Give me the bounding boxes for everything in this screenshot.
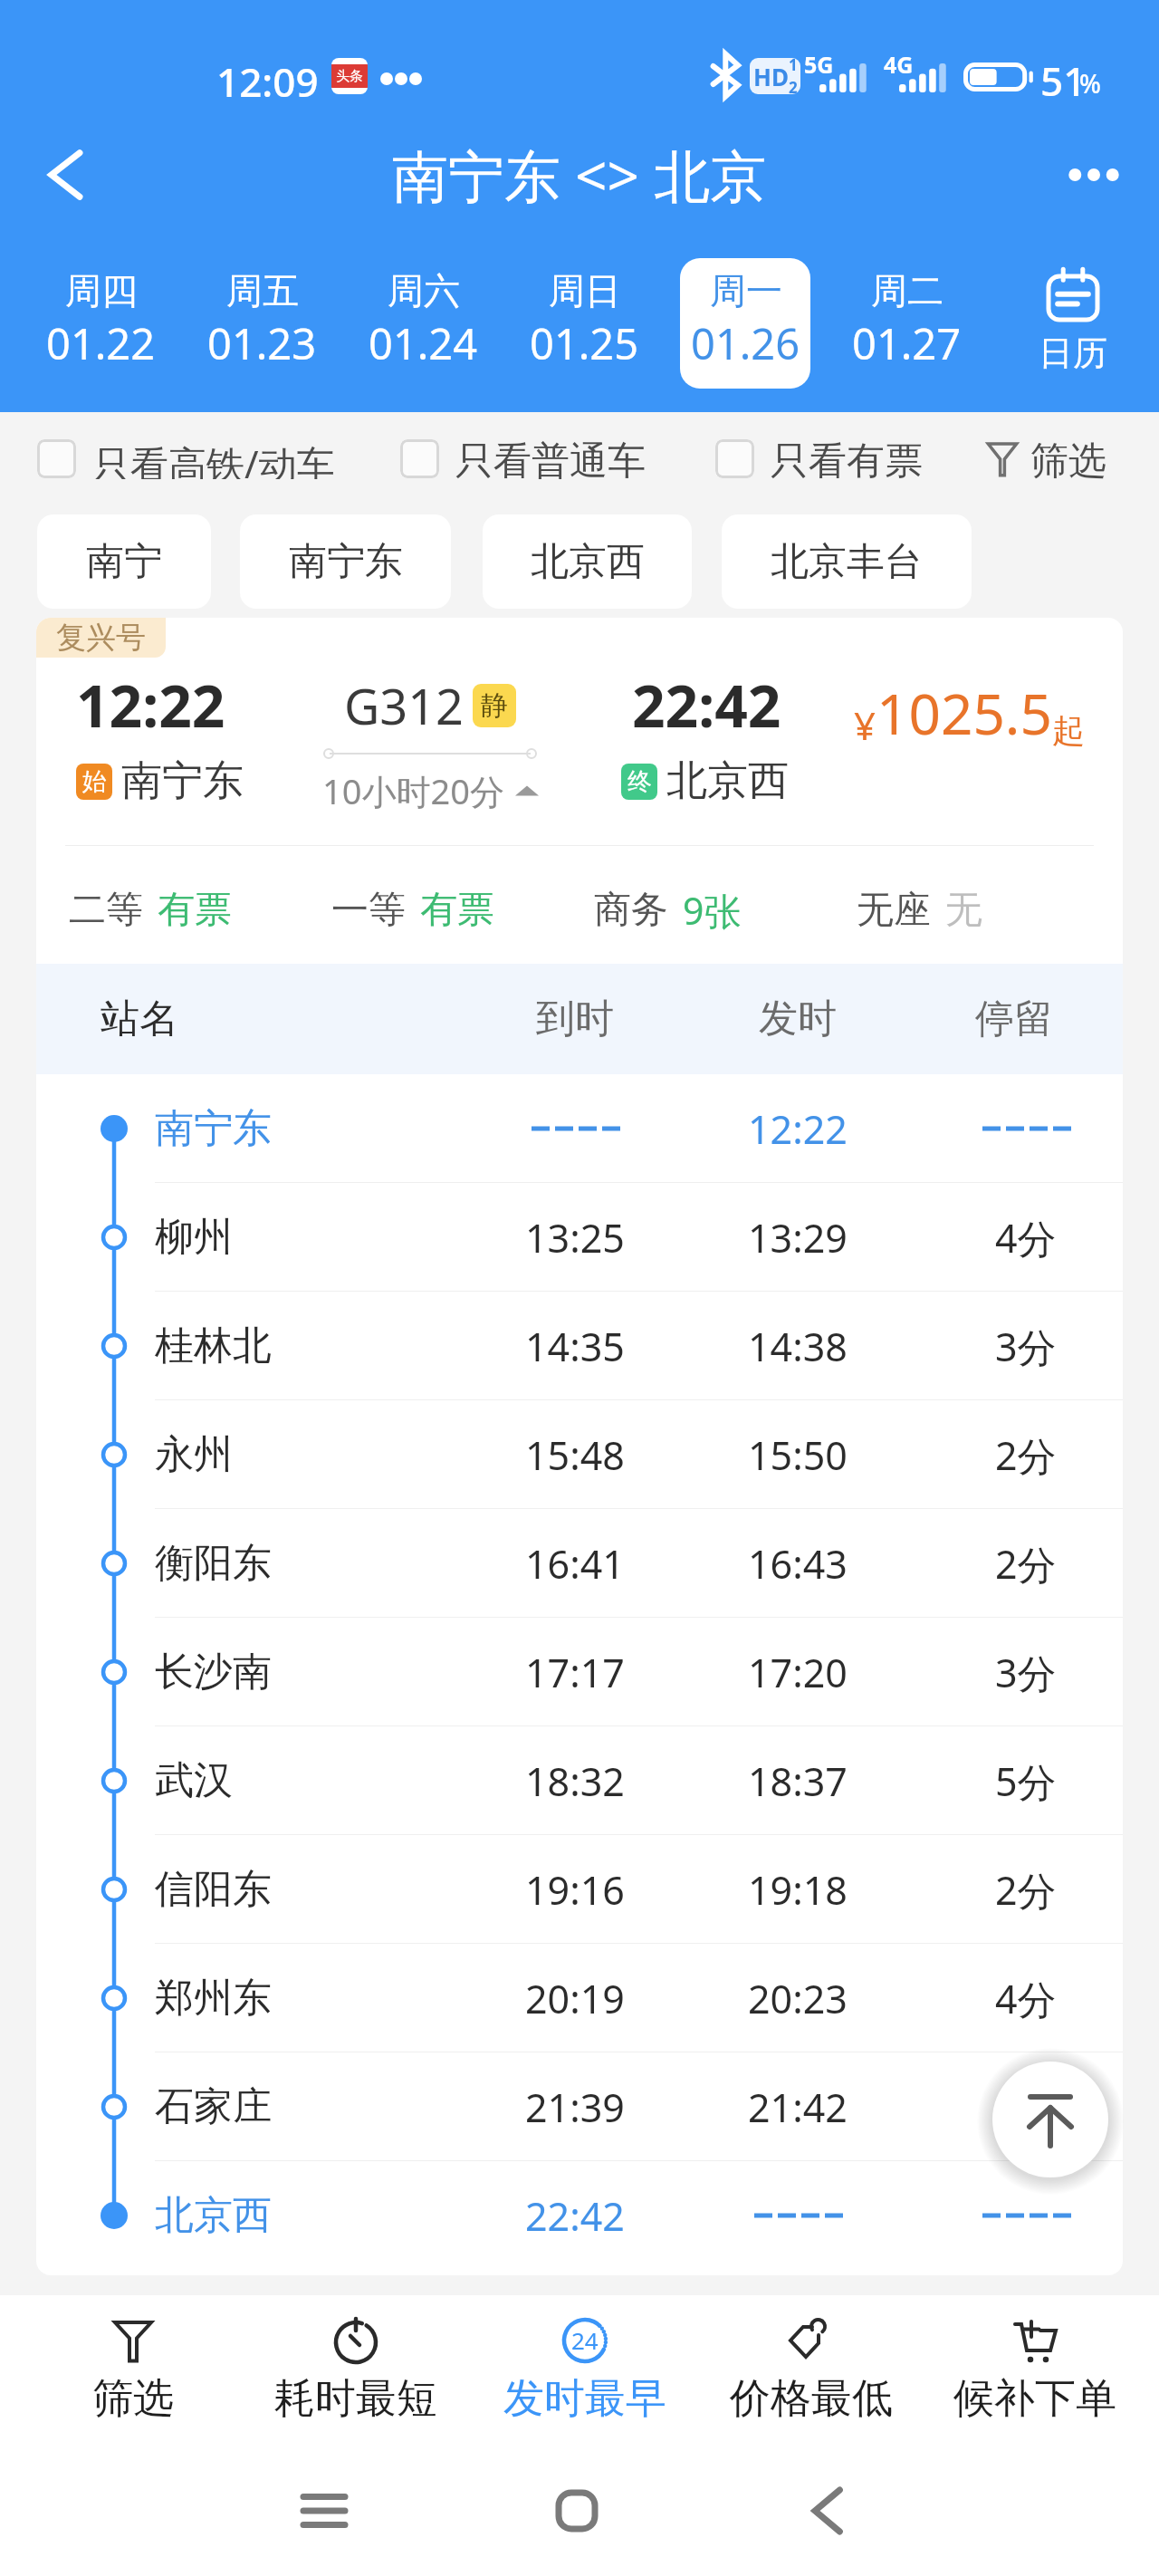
staticText: 二等	[69, 887, 143, 934]
staticText: 静	[481, 688, 508, 723]
staticText: 周二	[871, 268, 943, 313]
staticText: 桂林北	[155, 1322, 272, 1370]
staticText: 商务	[594, 887, 668, 934]
staticText: 17:17	[525, 1646, 625, 1699]
staticText: 耗时最短	[274, 2373, 437, 2425]
staticText: 南宁东 <> 北京	[392, 137, 767, 214]
button[interactable]: 周日	[519, 258, 649, 389]
button[interactable]: 武汉	[36, 1726, 1123, 1835]
staticText: 18:37	[748, 1754, 848, 1808]
staticText: 01.22	[46, 314, 156, 372]
button[interactable]: 郑州东	[36, 1944, 1123, 2052]
button[interactable]: 长沙南	[36, 1618, 1123, 1726]
staticText: 到时	[536, 995, 614, 1043]
staticText: 筛选	[92, 2373, 174, 2425]
staticText: 有票	[420, 887, 494, 934]
staticText: 永州	[155, 1430, 233, 1479]
staticText: 北京丰台	[771, 538, 923, 586]
button[interactable]: 周一	[680, 258, 810, 389]
button[interactable]: 南宁	[37, 514, 211, 609]
button[interactable]: Calendar	[987, 234, 1159, 412]
staticText: 周一	[710, 268, 782, 313]
button[interactable]: 耗时最短	[247, 2295, 465, 2446]
staticText: 20:23	[748, 1972, 848, 2025]
staticText: 无座	[857, 887, 931, 934]
staticText: 19:16	[525, 1863, 625, 1917]
staticText: 有票	[158, 887, 232, 934]
staticText: 01.26	[691, 314, 800, 372]
button[interactable]: 只看高铁/动车	[37, 437, 335, 479]
staticText: 南宁东	[121, 755, 244, 807]
button[interactable]: More options	[1054, 135, 1134, 215]
staticText: 01.23	[207, 314, 317, 372]
button[interactable]: 北京西	[36, 2161, 1123, 2270]
staticText: 2	[789, 77, 798, 94]
button[interactable]: 筛选	[24, 2295, 242, 2446]
button[interactable]: 价格最低	[703, 2295, 920, 2446]
button[interactable]: 周四	[35, 258, 166, 389]
button[interactable]: 候补下单	[926, 2295, 1144, 2446]
staticText: 停留	[975, 995, 1053, 1043]
staticText: 14:35	[525, 1320, 625, 1373]
button[interactable]: Back	[786, 2470, 867, 2552]
staticText: 北京西	[155, 2191, 272, 2240]
staticText: 只看高铁/动车	[92, 437, 335, 479]
staticText: 北京西	[531, 538, 645, 586]
button[interactable]: Back	[25, 135, 105, 215]
staticText: 12:09	[216, 54, 319, 109]
staticText: 5分	[995, 1754, 1057, 1808]
button[interactable]: 北京丰台	[722, 514, 972, 609]
button[interactable]: 南宁东	[36, 1074, 1123, 1183]
staticText: 01.25	[530, 314, 639, 372]
button[interactable]: 衡阳东	[36, 1509, 1123, 1618]
staticText: 武汉	[155, 1756, 233, 1805]
button[interactable]: 桂林北	[36, 1292, 1123, 1400]
button[interactable]: 信阳东	[36, 1835, 1123, 1944]
button[interactable]: 周六	[358, 258, 488, 389]
button[interactable]: 只看普通车	[400, 437, 646, 479]
staticText: 4G	[884, 49, 914, 80]
staticText: 2分	[995, 1428, 1057, 1482]
staticText: 16:43	[748, 1537, 848, 1591]
staticText: 起	[1052, 710, 1085, 751]
button[interactable]: Recent apps	[283, 2470, 365, 2552]
button[interactable]: 24	[476, 2295, 694, 2446]
staticText: 发时	[759, 995, 837, 1043]
staticText: 19:18	[748, 1863, 848, 1917]
staticText: 16:41	[525, 1537, 625, 1591]
button[interactable]: 北京西	[483, 514, 692, 609]
staticText: 日历	[1039, 332, 1107, 375]
button[interactable]: 石家庄	[36, 2052, 1123, 2161]
staticText: 1025.5	[876, 675, 1052, 751]
staticText: 发时最早	[503, 2373, 666, 2425]
staticText: 01.24	[369, 314, 478, 372]
button[interactable]: 柳州	[36, 1183, 1123, 1292]
staticText: 长沙南	[155, 1648, 272, 1697]
staticText: 头条	[336, 68, 363, 85]
staticText: 13:29	[748, 1211, 848, 1264]
staticText: %	[1079, 66, 1101, 101]
staticText: 郑州东	[155, 1974, 272, 2023]
staticText: 1	[789, 58, 798, 75]
staticText: 无	[945, 887, 982, 934]
staticText: 筛选	[1030, 437, 1106, 479]
staticText: 12:22	[76, 666, 225, 745]
staticText: 3分	[995, 2081, 1057, 2134]
button[interactable]: 永州	[36, 1400, 1123, 1509]
staticText: 衡阳东	[155, 1539, 272, 1588]
button[interactable]: Back to top	[978, 2047, 1123, 2192]
staticText: 10小时20分	[322, 767, 504, 814]
button[interactable]: Home	[536, 2470, 618, 2552]
button[interactable]: 只看有票	[715, 437, 923, 479]
staticText: 始	[82, 766, 107, 797]
button[interactable]: 周五	[196, 258, 327, 389]
button[interactable]: 周二	[841, 258, 972, 389]
staticText: 12:22	[748, 1102, 848, 1156]
staticText: 21:42	[748, 2081, 848, 2134]
staticText: 石家庄	[155, 2082, 272, 2131]
staticText: 17:20	[748, 1646, 848, 1699]
button[interactable]: 筛选	[987, 437, 1106, 479]
button[interactable]: 南宁东	[240, 514, 451, 609]
staticText: 北京西	[666, 755, 789, 807]
staticText: 终	[627, 766, 652, 797]
